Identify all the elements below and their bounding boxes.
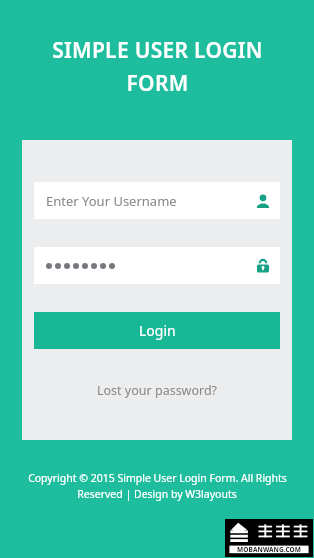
button[interactable]: Login [34,312,280,349]
staticText: Copyright © 2015 Simple User Login Form.… [28,471,287,485]
other: Password [256,259,270,273]
button[interactable]: Password [34,247,280,284]
button[interactable]: Enter Your Username [34,182,280,219]
staticText: SIMPLE USER LOGIN [52,36,263,65]
staticText: FORM [126,69,189,98]
staticText: Enter Your Username [46,192,256,210]
staticText: Reserved | Design by W3layouts [77,487,237,501]
staticText: MOBANWANG.COM [237,545,302,554]
other: Username [256,194,270,208]
button[interactable]: Lost your password? [91,378,224,403]
staticText: Lost your password? [97,382,218,399]
staticText: Login [139,321,176,340]
